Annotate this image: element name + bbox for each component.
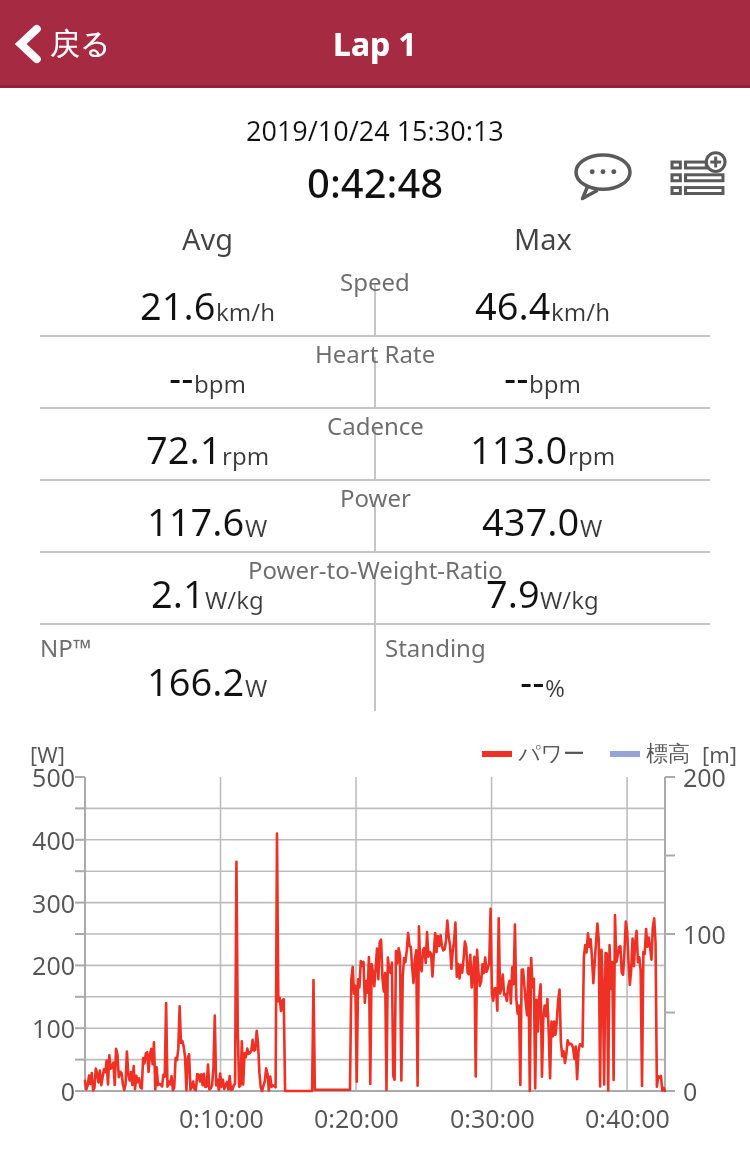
staticText: 166.2 <box>147 655 245 707</box>
staticText: W <box>245 671 268 704</box>
staticText: Heart Rate <box>315 337 436 370</box>
staticText: bpm <box>529 367 581 400</box>
staticText: 0:10:00 <box>179 1101 264 1135</box>
staticText: Max <box>514 219 572 258</box>
staticText: 0:40:00 <box>585 1101 670 1135</box>
button[interactable]: Add to list <box>664 147 732 207</box>
staticText: Power-to-Weight-Ratio <box>248 553 503 586</box>
staticText: Speed <box>340 265 410 298</box>
staticText: 2.1 <box>151 567 205 619</box>
staticText: rpm <box>568 439 616 472</box>
staticText: Standing <box>385 631 486 664</box>
staticText: 7.9 <box>486 567 540 619</box>
staticText: パワー <box>518 740 586 768</box>
staticText: [m] <box>702 739 738 769</box>
button[interactable]: 戻る <box>10 19 117 69</box>
staticText: W/kg <box>540 583 599 616</box>
staticText: 標高 <box>646 740 690 768</box>
staticText: 72.1 <box>146 423 222 475</box>
button[interactable]: Comments <box>568 147 638 207</box>
staticText: 46.4 <box>475 279 551 331</box>
staticText: 戻る <box>50 25 111 63</box>
staticText: 113.0 <box>470 423 568 475</box>
staticText: 437.0 <box>482 495 580 547</box>
staticText: km/h <box>216 295 276 328</box>
staticText: -- <box>169 351 194 403</box>
staticText: -- <box>504 351 529 403</box>
staticText: 0:30:00 <box>450 1101 535 1135</box>
staticText: W/kg <box>205 583 264 616</box>
staticText: 500 <box>32 760 75 794</box>
staticText: 0 <box>60 1074 75 1108</box>
staticText: rpm <box>222 439 270 472</box>
staticText: 200 <box>32 948 75 982</box>
staticText: Lap 1 <box>333 22 417 66</box>
staticText: 0:20:00 <box>314 1101 399 1135</box>
staticText: Cadence <box>327 409 424 442</box>
staticText: -- <box>520 655 545 707</box>
staticText: W <box>580 511 603 544</box>
staticText: Avg <box>182 219 234 258</box>
staticText: 400 <box>32 823 75 857</box>
staticText: 0:42:48 <box>307 155 444 209</box>
staticText: 2019/10/24 15:30:13 <box>246 112 504 149</box>
staticText: 21.6 <box>140 279 216 331</box>
staticText: 0 <box>683 1074 698 1108</box>
staticText: km/h <box>551 295 611 328</box>
staticText: W <box>245 511 268 544</box>
staticText: 117.6 <box>147 495 245 547</box>
staticText: % <box>545 671 565 704</box>
staticText: bpm <box>194 367 246 400</box>
staticText: 300 <box>32 886 75 920</box>
staticText: 200 <box>683 760 726 794</box>
staticText: 100 <box>32 1011 75 1045</box>
staticText: [W] <box>30 739 65 769</box>
staticText: 100 <box>683 917 726 951</box>
staticText: NP™ <box>40 631 92 664</box>
staticText: Power <box>340 481 411 514</box>
